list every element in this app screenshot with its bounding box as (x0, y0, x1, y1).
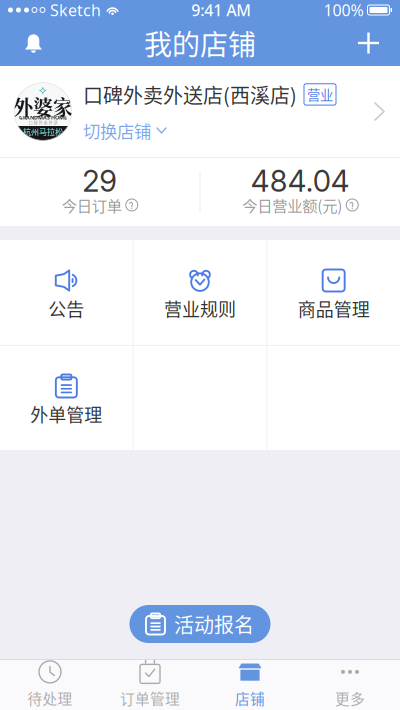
staticText: 今日营业额(元) (242, 194, 342, 216)
staticText: Sketch (50, 0, 101, 21)
staticText: 店铺 (235, 687, 265, 709)
staticText: 29 (82, 163, 117, 199)
staticText: 口 碑 外 卖 外 送 (28, 119, 57, 126)
button[interactable]: ⟡ (0, 66, 400, 157)
staticText: 100% (323, 0, 363, 21)
staticText: 口碑外卖外送店(西溪店) (83, 80, 297, 109)
button[interactable]: 商品管理 (267, 240, 400, 345)
button[interactable]: 外单管理 (0, 346, 133, 450)
button[interactable]: 订单管理 (100, 654, 200, 710)
staticText: ⟡ (39, 85, 47, 96)
staticText: 切换店铺 (83, 118, 151, 143)
button[interactable]: 公告 (0, 240, 133, 345)
button[interactable]: 待处理 (0, 654, 100, 710)
staticText: 杭州马拉松 (23, 126, 63, 137)
staticText: 484.04 (251, 163, 350, 199)
button[interactable]: Add (347, 20, 390, 65)
button[interactable]: 活动报名 (129, 605, 270, 643)
staticText: 我的店铺 (144, 23, 256, 63)
staticText: 9:41 AM (191, 0, 251, 21)
staticText: 商品管理 (298, 295, 370, 322)
staticText: 外婆家 (13, 92, 73, 121)
staticText: 更多 (335, 687, 365, 709)
staticText: 今日订单 (62, 194, 122, 216)
staticText: 待处理 (27, 687, 72, 709)
button[interactable]: Notifications (12, 20, 55, 65)
button[interactable]: 更多 (300, 654, 400, 710)
staticText: 营业 (307, 85, 333, 104)
staticText: 外单管理 (30, 401, 102, 427)
button[interactable]: 营业规则 (134, 240, 266, 345)
staticText: 营业规则 (164, 295, 236, 322)
staticText: 活动报名 (174, 609, 254, 638)
staticText: 公告 (48, 295, 84, 322)
staticText: 订单管理 (120, 687, 180, 709)
button[interactable]: 店铺 (200, 654, 300, 710)
staticText: GRANDMA'S HOME (19, 114, 67, 121)
